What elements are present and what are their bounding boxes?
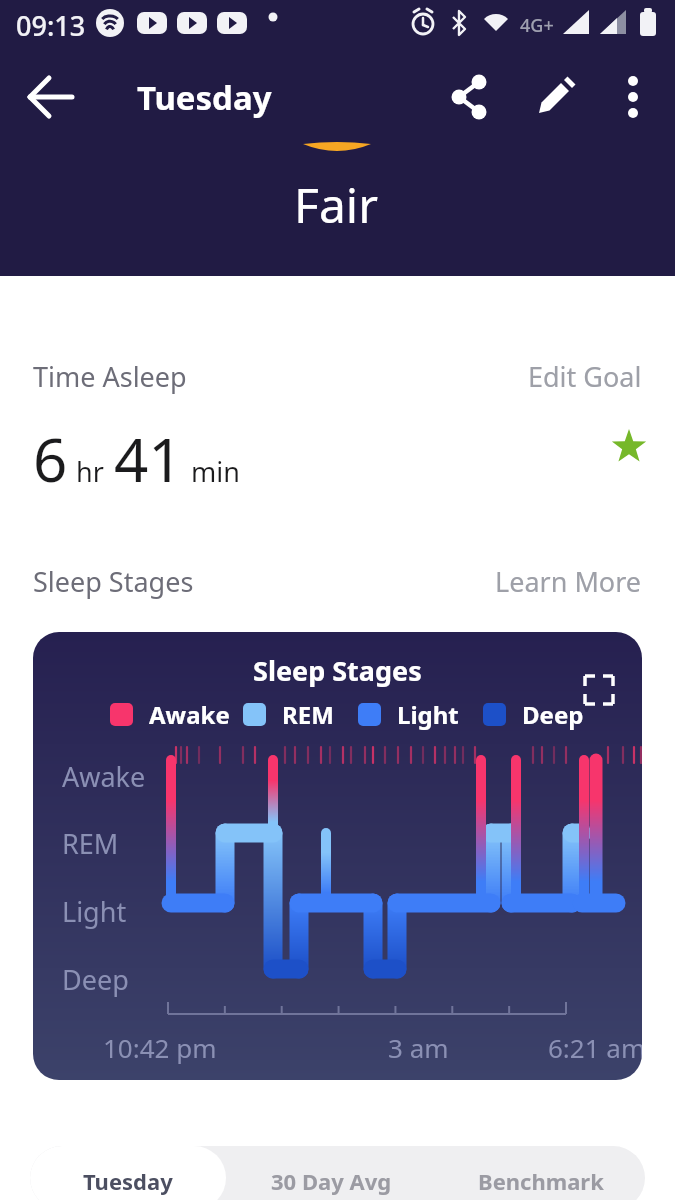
staticText: Fair: [294, 172, 379, 237]
staticText: Deep: [62, 961, 129, 998]
button[interactable]: [605, 69, 661, 125]
button[interactable]: Learn More: [495, 563, 642, 600]
button[interactable]: [24, 69, 80, 125]
button[interactable]: Benchmark: [436, 1146, 645, 1200]
staticText: Sleep Stages: [253, 652, 422, 689]
staticText: Deep: [522, 698, 584, 731]
staticText: REM: [62, 825, 119, 862]
button[interactable]: Tuesday: [30, 1146, 226, 1200]
staticText: 09:13: [16, 7, 86, 44]
staticText: Awake: [62, 758, 146, 795]
staticText: REM: [282, 698, 334, 731]
button[interactable]: Edit Goal: [528, 358, 642, 395]
staticText: min: [191, 453, 240, 490]
staticText: 30 Day Avg: [271, 1166, 392, 1196]
button[interactable]: 30 Day Avg: [226, 1146, 436, 1200]
staticText: 4G+: [520, 13, 554, 38]
button[interactable]: [579, 670, 619, 710]
staticText: Light: [397, 698, 459, 731]
staticText: Benchmark: [478, 1166, 604, 1196]
staticText: Tuesday: [137, 75, 272, 120]
staticText: 6: [33, 418, 68, 500]
staticText: hr: [76, 453, 104, 490]
staticText: Light: [62, 893, 127, 930]
staticText: 41: [114, 418, 183, 500]
staticText: 10:42 pm: [103, 1030, 217, 1065]
staticText: Learn More: [495, 563, 642, 600]
staticText: 6:21 am: [548, 1030, 642, 1065]
staticText: Edit Goal: [528, 358, 642, 395]
staticText: Awake: [149, 698, 230, 731]
staticText: Sleep Stages: [33, 563, 194, 600]
staticText: Time Asleep: [33, 358, 187, 395]
staticText: 3 am: [388, 1030, 449, 1065]
staticText: Tuesday: [83, 1166, 173, 1196]
button[interactable]: [439, 69, 495, 125]
button[interactable]: [527, 69, 583, 125]
